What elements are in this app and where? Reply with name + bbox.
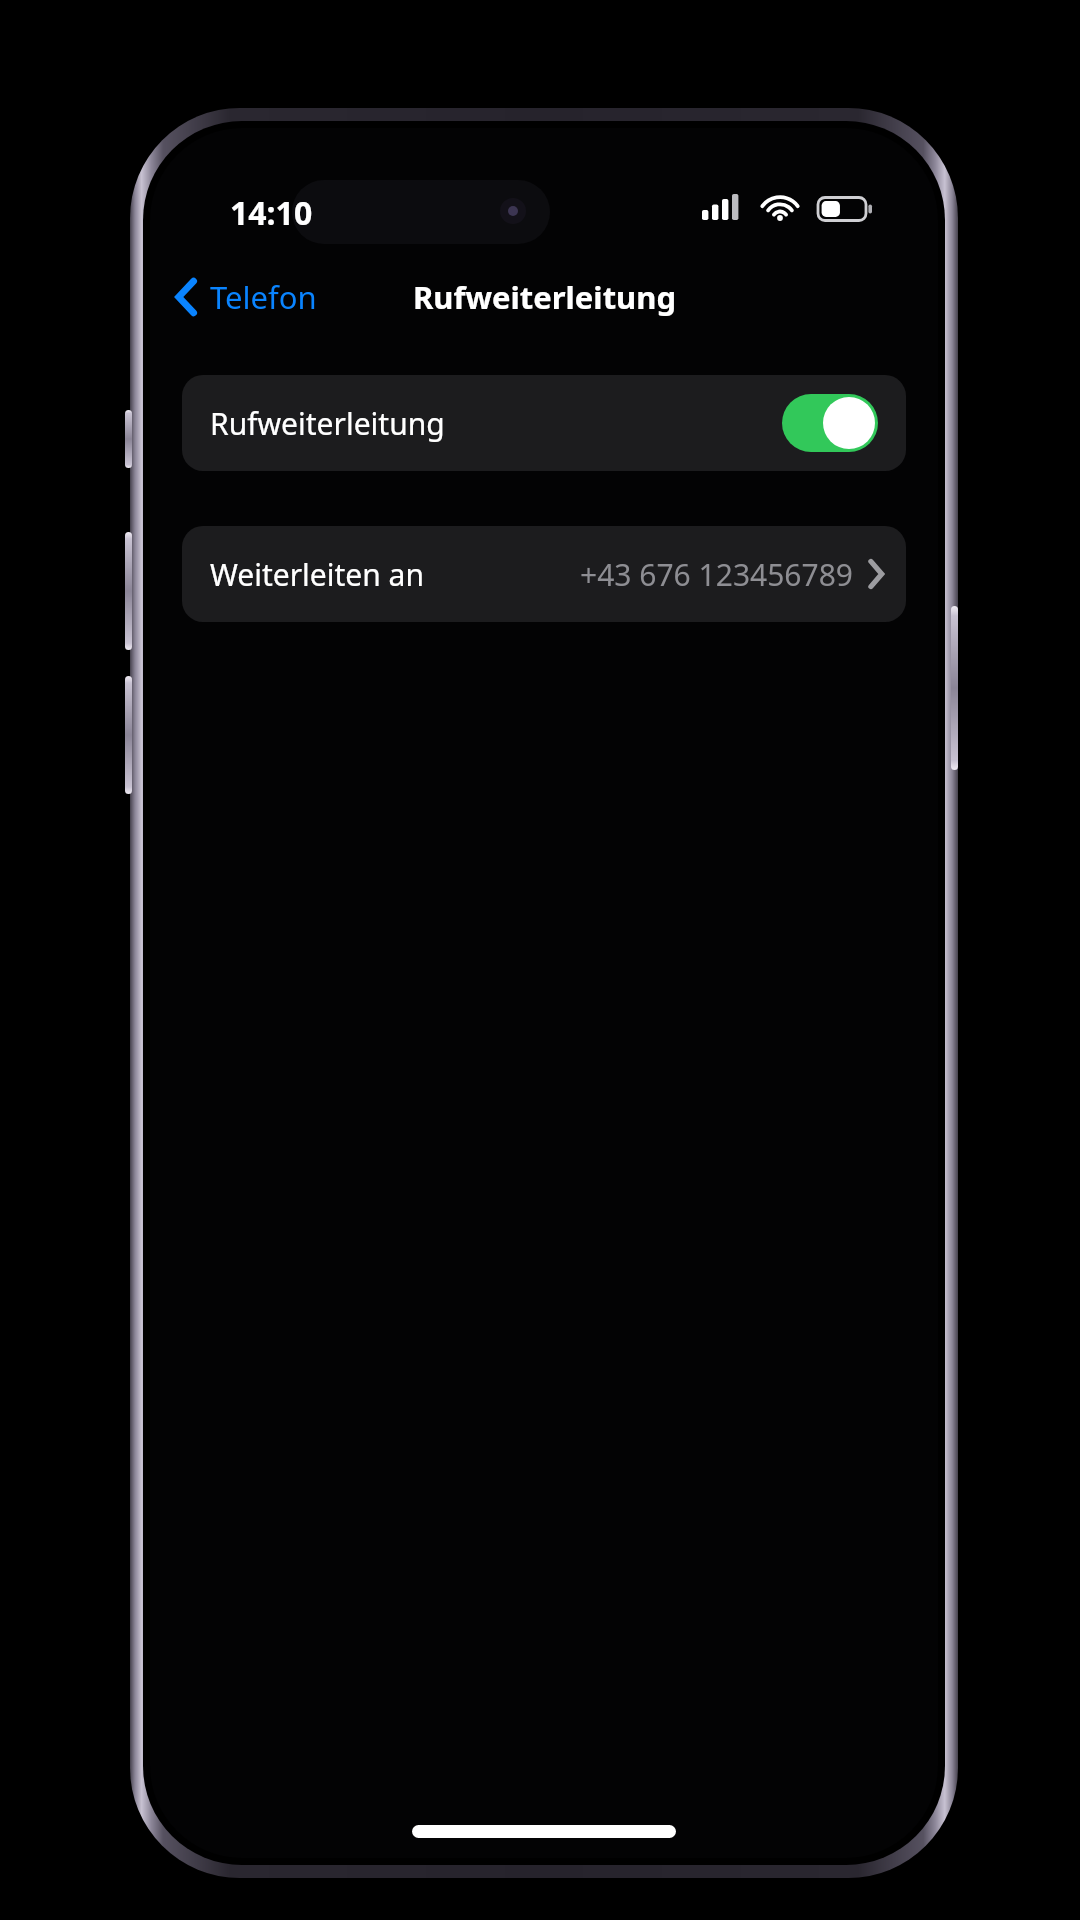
staticText: Rufweiterleitung <box>210 403 445 444</box>
staticText: Weiterleiten an <box>210 554 424 595</box>
button[interactable]: Rufweiterleitung einschalten <box>782 394 878 452</box>
button[interactable]: Telefon <box>162 266 331 328</box>
button[interactable]: Weiterleiten an <box>182 526 906 622</box>
staticText: 14:10 <box>230 191 313 235</box>
staticText: Telefon <box>210 276 317 318</box>
button[interactable]: Rufweiterleitung <box>182 375 906 471</box>
staticText: +43 676 123456789 <box>580 554 853 595</box>
staticText: Rufweiterleitung <box>413 276 676 318</box>
